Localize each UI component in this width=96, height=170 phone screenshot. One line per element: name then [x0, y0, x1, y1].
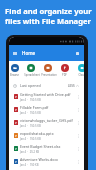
button[interactable]: Browse — [11, 64, 19, 72]
staticText: Spreadsheet — [24, 73, 40, 77]
staticText: Jan 4 · 25.2 KB — [20, 150, 40, 154]
button[interactable]: Cloud — [78, 64, 84, 72]
staticText: Home — [22, 50, 36, 56]
button[interactable]: Open navigation menu — [11, 49, 19, 57]
staticText: Last opened — [20, 83, 41, 88]
staticText: files with File Manager — [5, 16, 91, 26]
staticText: Cloud — [78, 73, 84, 77]
button[interactable]: victorwhduggs_tucker_GHS.pdf — [9, 116, 84, 129]
button[interactable]: Adventure Works.docx — [9, 155, 84, 168]
button[interactable]: More options — [75, 106, 82, 113]
button[interactable]: More options — [75, 119, 82, 126]
button[interactable]: Presentation — [44, 64, 52, 72]
staticText: Browse — [10, 73, 19, 77]
button[interactable]: LESS — [67, 83, 80, 89]
button[interactable]: PDF — [61, 64, 69, 72]
staticText: Jan 4 · 150 KB — [20, 163, 39, 167]
staticText: Jan 4 · 150.5 KB — [20, 111, 41, 115]
staticText: expodishatoku.pptx — [20, 131, 54, 136]
button[interactable]: Fillable Form.pdf — [9, 103, 84, 116]
staticText: Getting Started with Drive.pdf — [20, 92, 71, 97]
staticText: Adventure Works.docx — [20, 157, 59, 162]
staticText: Event Budget Sheet.xlsx — [20, 144, 61, 149]
button[interactable]: Event Budget Sheet.xlsx — [9, 142, 84, 155]
button[interactable]: Switch layout — [73, 49, 81, 57]
staticText: LESS — [68, 84, 75, 88]
staticText: Presentation — [41, 73, 57, 77]
button[interactable]: More options — [75, 145, 82, 152]
staticText: victorwhduggs_tucker_GHS.pdf — [20, 118, 73, 123]
button[interactable]: More options — [75, 93, 82, 100]
button[interactable]: expodishatoku.pptx — [9, 129, 84, 142]
staticText: Jan 4 · 150.5 KB — [20, 137, 41, 141]
staticText: Find and organize your — [5, 6, 92, 16]
button[interactable]: Spreadsheet — [27, 64, 35, 72]
button[interactable]: Getting Started with Drive.pdf — [9, 90, 84, 103]
staticText: Jan 4 · 150.5 KB — [20, 124, 41, 128]
staticText: Fillable Form.pdf — [20, 105, 49, 110]
button[interactable]: More options — [75, 158, 82, 165]
staticText: PDF — [62, 73, 67, 77]
button[interactable]: More options — [75, 132, 82, 139]
staticText: Jan 4 · 150.5 KB — [20, 98, 41, 102]
